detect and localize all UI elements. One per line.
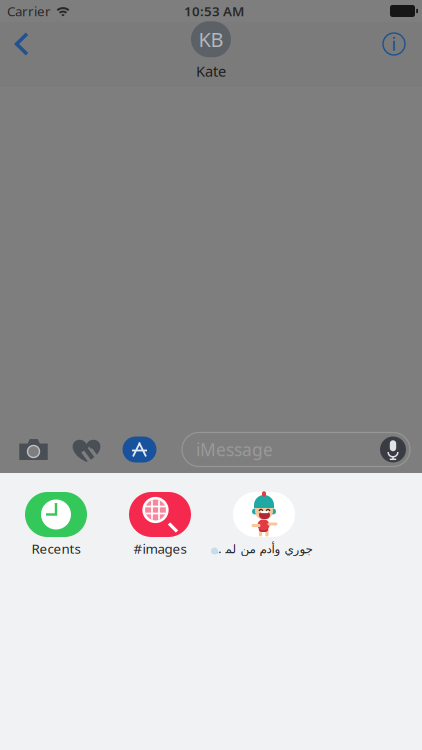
button[interactable]: Stickers: [212, 492, 316, 558]
button[interactable]: Recents: [4, 492, 108, 558]
button[interactable]: #images: [108, 492, 212, 558]
button[interactable]: iMessage: [182, 432, 410, 466]
staticText: Carrier: [7, 2, 51, 20]
button[interactable]: KB: [191, 21, 231, 81]
staticText: iMessage: [196, 438, 273, 461]
staticText: i: [391, 32, 396, 55]
staticText: #images: [133, 540, 186, 557]
staticText: جوري وأدم من لمسة: [212, 540, 312, 556]
button[interactable]: Camera: [7, 429, 60, 469]
staticText: KB: [198, 26, 223, 53]
button[interactable]: Details: [372, 27, 416, 61]
staticText: Recents: [31, 540, 80, 557]
staticText: 10:53 AM: [184, 2, 244, 20]
button[interactable]: Digital Touch: [60, 429, 113, 469]
staticText: Kate: [196, 61, 226, 81]
button[interactable]: App Store: [113, 429, 166, 469]
button[interactable]: Back: [0, 27, 44, 61]
